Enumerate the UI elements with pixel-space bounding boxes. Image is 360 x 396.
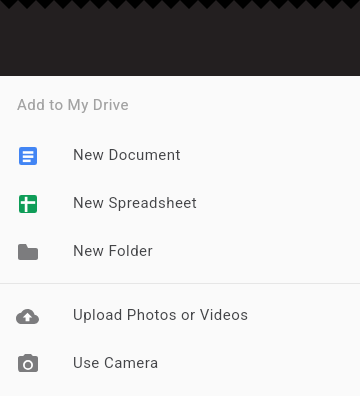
staticText: New Spreadsheet (73, 194, 198, 212)
button[interactable]: New Folder (0, 227, 360, 275)
button[interactable]: Upload Photos or Videos (0, 291, 360, 339)
button[interactable]: New Spreadsheet (0, 179, 360, 227)
staticText: New Folder (73, 242, 153, 260)
staticText: Upload Photos or Videos (73, 306, 249, 324)
button[interactable]: New Document (0, 131, 360, 179)
button[interactable]: Use Camera (0, 339, 360, 387)
staticText: Use Camera (73, 354, 159, 372)
staticText: New Document (73, 146, 181, 164)
staticText: Add to My Drive (17, 96, 129, 114)
